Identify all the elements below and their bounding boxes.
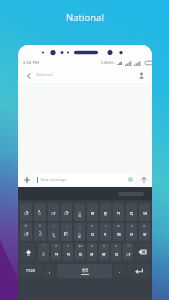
button[interactable]: ा bbox=[48, 203, 59, 221]
staticText: च bbox=[143, 231, 147, 238]
button[interactable]: ऽ bbox=[48, 223, 59, 241]
staticText: य bbox=[115, 251, 118, 258]
button[interactable]: ऩ bbox=[63, 243, 73, 261]
staticText: ो bbox=[24, 231, 29, 238]
staticText: ु bbox=[78, 231, 81, 238]
button[interactable]: ग bbox=[113, 203, 124, 221]
staticText: ी bbox=[64, 209, 69, 216]
staticText: व bbox=[79, 251, 82, 258]
button[interactable]: थ bbox=[126, 223, 137, 241]
staticText: . bbox=[119, 268, 121, 274]
staticText: ऻ bbox=[127, 244, 130, 248]
button[interactable]: ह bbox=[100, 203, 111, 221]
staticText: ण bbox=[55, 244, 58, 248]
staticText: त bbox=[130, 231, 133, 238]
button[interactable]: ै bbox=[34, 203, 46, 221]
staticText: क bbox=[117, 231, 121, 238]
staticText: ा bbox=[51, 209, 56, 216]
staticText: ग bbox=[117, 209, 120, 216]
other: Shift bbox=[25, 249, 32, 256]
staticText: ल bbox=[90, 251, 94, 258]
button[interactable]: �व bbox=[75, 243, 85, 261]
staticText: 5.66K/s bbox=[101, 60, 115, 65]
staticText: ज bbox=[143, 209, 147, 216]
button[interactable]: Period bbox=[114, 264, 125, 278]
staticText: ै bbox=[38, 209, 42, 216]
button[interactable]: ख bbox=[113, 223, 124, 241]
button[interactable]: ू bbox=[74, 203, 85, 221]
button[interactable]: छ bbox=[139, 223, 150, 241]
staticText: 2:04 PM bbox=[23, 60, 39, 66]
staticText: म bbox=[55, 251, 58, 258]
button[interactable]: Text message bbox=[34, 174, 136, 185]
staticText: ि bbox=[64, 231, 69, 238]
button[interactable]: ऒ bbox=[20, 223, 32, 241]
staticText: ा bbox=[126, 251, 131, 258]
staticText: ऍ bbox=[39, 224, 41, 228]
staticText: ऱ bbox=[105, 224, 107, 228]
staticText: द bbox=[130, 209, 133, 216]
staticText: स bbox=[102, 251, 106, 258]
staticText: ू bbox=[78, 209, 82, 216]
button[interactable]: Comma bbox=[44, 264, 55, 278]
staticText: �व bbox=[78, 244, 83, 248]
staticText: ँ bbox=[43, 244, 45, 248]
button[interactable]: Contact details bbox=[136, 70, 147, 81]
staticText: प bbox=[91, 231, 94, 238]
button[interactable]: य़ bbox=[111, 243, 121, 261]
staticText: ळ bbox=[91, 244, 94, 248]
staticText: ऽ bbox=[53, 224, 55, 228]
staticText: फ bbox=[91, 224, 94, 228]
staticText: य़ bbox=[115, 244, 117, 248]
button[interactable]: Send bbox=[138, 174, 149, 185]
button[interactable]: द bbox=[126, 203, 137, 221]
button[interactable]: ?123 bbox=[20, 264, 42, 278]
staticText: , bbox=[49, 268, 51, 274]
staticText: े bbox=[39, 231, 42, 238]
staticText: ख bbox=[117, 224, 120, 228]
staticText: छ bbox=[143, 224, 146, 228]
staticText: ह bbox=[104, 209, 107, 216]
button[interactable]: ी bbox=[61, 203, 72, 221]
button[interactable]: ऍ bbox=[34, 223, 46, 241]
staticText: ऩ bbox=[67, 244, 69, 248]
button[interactable]: Backspace bbox=[135, 243, 150, 261]
staticText: न bbox=[67, 251, 70, 258]
button[interactable]: Back bbox=[23, 70, 34, 81]
button[interactable]: Shift bbox=[20, 243, 36, 261]
button[interactable]: Enter bbox=[127, 264, 150, 278]
staticText: ब bbox=[91, 209, 94, 216]
staticText: Text message bbox=[40, 177, 67, 183]
button[interactable]: Attach bbox=[21, 174, 32, 185]
staticText: श bbox=[103, 244, 106, 248]
button[interactable]: ण bbox=[51, 243, 61, 261]
button[interactable]: ँ bbox=[38, 243, 49, 261]
staticText: हिंदी bbox=[82, 268, 89, 273]
staticText: ं bbox=[42, 251, 45, 258]
staticText: National bbox=[36, 72, 53, 78]
button[interactable]: श bbox=[99, 243, 109, 261]
staticText: ?123 bbox=[26, 268, 36, 274]
button[interactable]: Space bbox=[57, 264, 112, 278]
staticText: ॄ bbox=[79, 224, 81, 228]
button[interactable]: ज bbox=[139, 203, 150, 221]
button[interactable]: ृ bbox=[61, 223, 72, 241]
staticText: थ bbox=[131, 224, 133, 228]
staticText: ् bbox=[52, 231, 55, 238]
staticText: ृ bbox=[66, 224, 68, 228]
staticText: ऒ bbox=[24, 224, 28, 228]
button[interactable]: ळ bbox=[87, 243, 97, 261]
button[interactable]: ॄ bbox=[74, 223, 85, 241]
button[interactable]: ब bbox=[87, 203, 98, 221]
button[interactable]: ऱ bbox=[100, 223, 111, 241]
button[interactable]: ौ bbox=[20, 203, 32, 221]
staticText: ौ bbox=[24, 209, 29, 216]
staticText: र bbox=[104, 231, 107, 238]
staticText: National bbox=[66, 11, 104, 24]
button[interactable]: फ bbox=[87, 223, 98, 241]
other: Backspace bbox=[138, 249, 147, 255]
button[interactable]: ऻ bbox=[123, 243, 133, 261]
